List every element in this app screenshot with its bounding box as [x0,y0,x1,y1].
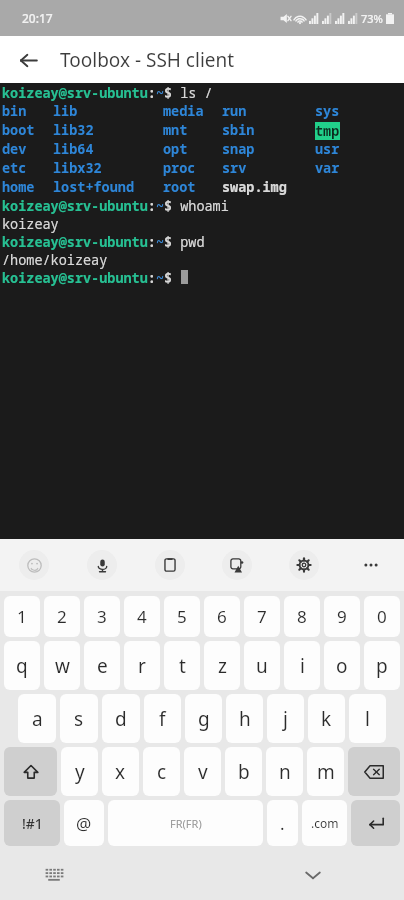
button[interactable]: u [244,641,280,690]
staticText: 73% [361,11,383,26]
staticText: g [198,706,210,732]
staticText: z [218,653,227,679]
button[interactable]: Stickers [203,539,270,591]
staticText: k [321,706,332,732]
staticText: lib32 [53,121,94,139]
staticText: swap.img [222,178,287,196]
staticText: FR(FR) [170,816,202,831]
button[interactable]: v [184,747,221,796]
staticText: s [74,706,84,732]
button[interactable]: Settings [270,539,337,591]
button[interactable]: i [284,641,320,690]
button[interactable]: c [143,747,180,796]
button[interactable]: Back [8,40,48,80]
button[interactable]: 9 [324,596,360,637]
staticText: q [16,653,28,679]
button[interactable]: t [164,641,200,690]
button[interactable]: z [204,641,240,690]
button[interactable]: 5 [164,596,200,637]
staticText: snap [222,140,255,158]
button[interactable]: w [44,641,80,690]
button[interactable]: y [61,747,98,796]
staticText: y [75,759,85,785]
button[interactable]: Backspace [348,747,400,796]
staticText: f [159,706,166,732]
staticText: p [376,653,388,679]
button[interactable]: Clipboard [136,539,203,591]
staticText: i [300,653,305,679]
staticText: o [336,653,348,679]
staticText: c [157,759,167,785]
button[interactable]: @ [64,800,104,846]
button[interactable]: x [102,747,139,796]
staticText: x [115,759,126,785]
staticText: 20:17 [22,10,53,26]
staticText: 5 [177,605,187,628]
staticText: !#1 [22,814,43,833]
button[interactable]: o [324,641,360,690]
staticText: media [163,102,204,120]
staticText: koizeay@srv-ubuntu:~$ whoami [2,197,229,215]
button[interactable]: 3 [84,596,120,637]
button[interactable]: j [267,694,304,743]
button[interactable]: Emoji [0,539,68,591]
staticText: 6 [217,605,227,628]
staticText: j [283,706,288,732]
staticText: v [198,759,208,785]
staticText: opt [163,140,188,158]
button[interactable]: Shift [4,747,57,796]
button[interactable]: f [144,694,181,743]
button[interactable]: a [18,694,56,743]
button[interactable]: 7 [244,596,280,637]
button[interactable]: .com [302,800,347,846]
button[interactable]: k [308,694,345,743]
button[interactable]: g [185,694,222,743]
button[interactable]: koizeay@srv-ubuntu:~$ ls / [0,83,404,539]
button[interactable]: p [364,641,400,690]
button[interactable]: Enter [351,800,400,846]
button[interactable]: FR(FR) [108,800,263,846]
button[interactable]: 6 [204,596,240,637]
staticText: h [239,706,251,732]
button[interactable]: m [307,747,344,796]
staticText: 1 [17,605,27,628]
staticText: srv [222,159,247,177]
staticText: sbin [222,121,255,139]
staticText: u [256,653,268,679]
staticText: 9 [337,605,347,628]
button[interactable]: Symbols [4,800,60,846]
staticText: koizeay@srv-ubuntu:~$ pwd [2,233,205,251]
button[interactable]: Hide keyboard [296,858,330,892]
staticText: 0 [377,605,387,628]
staticText: home [2,178,35,196]
button[interactable]: 2 [44,596,80,637]
button[interactable]: r [124,641,160,690]
staticText: sys [315,102,340,120]
staticText: koizeay@srv-ubuntu:~$ [2,269,181,287]
button[interactable]: d [102,694,140,743]
button[interactable]: s [60,694,98,743]
button[interactable]: Voice input [68,539,136,591]
staticText: 7 [257,605,267,628]
staticText: var [315,159,340,177]
button[interactable]: 8 [284,596,320,637]
button[interactable]: e [84,641,120,690]
button[interactable]: 1 [4,596,40,637]
button[interactable]: h [226,694,263,743]
staticText: libx32 [53,159,102,177]
button[interactable]: b [225,747,262,796]
button[interactable]: l [349,694,386,743]
staticText: root [163,178,196,196]
button[interactable]: More options [337,539,404,591]
staticText: d [115,706,127,732]
staticText: @ [76,812,92,835]
staticText: lost+found [53,178,134,196]
button[interactable]: 0 [364,596,400,637]
staticText: n [279,759,291,785]
button[interactable]: . [267,800,298,846]
button[interactable]: Switch keyboard [38,858,72,892]
button[interactable]: 4 [124,596,160,637]
staticText: 2 [57,605,67,628]
button[interactable]: n [266,747,303,796]
button[interactable]: q [4,641,40,690]
